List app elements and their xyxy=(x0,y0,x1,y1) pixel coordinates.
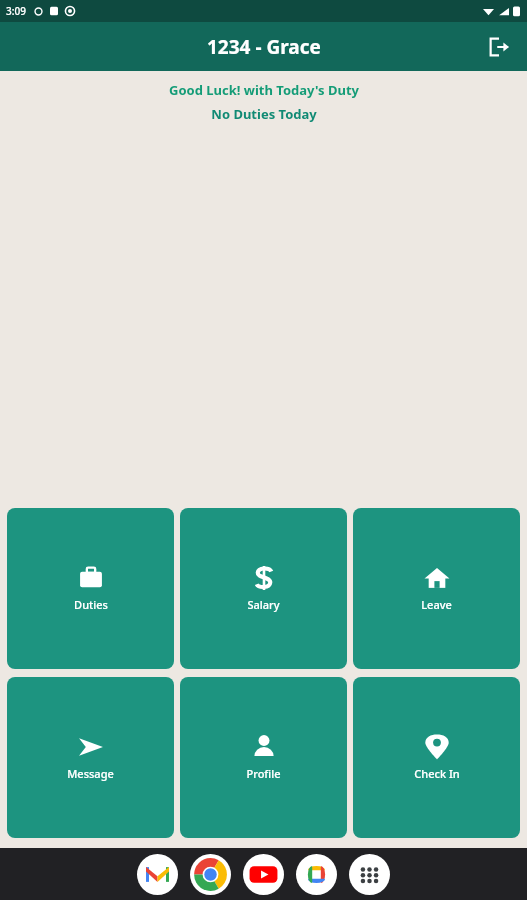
button[interactable]: Photos xyxy=(296,854,337,895)
button[interactable]: Check In xyxy=(353,677,520,838)
staticText: Profile xyxy=(246,766,281,781)
staticText: Check In xyxy=(414,766,460,781)
button[interactable]: Gmail xyxy=(137,854,178,895)
staticText: Message xyxy=(67,766,114,781)
button[interactable]: Chrome xyxy=(190,854,231,895)
staticText: 3:09 xyxy=(6,4,26,18)
staticText: Good Luck! with Today's Duty xyxy=(169,81,359,99)
staticText: Leave xyxy=(421,597,452,612)
button[interactable]: YouTube xyxy=(243,854,284,895)
button[interactable]: Duties xyxy=(7,508,174,669)
button[interactable]: Leave xyxy=(353,508,520,669)
button[interactable]: Message xyxy=(7,677,174,838)
staticText: No Duties Today xyxy=(211,105,317,123)
button[interactable]: Salary xyxy=(180,508,347,669)
button[interactable]: Logout xyxy=(479,27,519,67)
button[interactable]: All apps xyxy=(349,854,390,895)
staticText: Salary xyxy=(247,597,280,612)
button[interactable]: Profile xyxy=(180,677,347,838)
staticText: 1234 - Grace xyxy=(207,34,321,60)
staticText: Duties xyxy=(74,597,108,612)
